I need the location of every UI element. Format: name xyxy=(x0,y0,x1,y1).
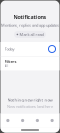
button[interactable]: Profile xyxy=(45,113,60,127)
staticText: Nothing new right now xyxy=(7,97,52,102)
button[interactable]: Mark all read xyxy=(14,31,46,38)
button[interactable]: Notifications xyxy=(30,113,45,127)
staticText: All xyxy=(4,64,8,68)
staticText: Mark all read xyxy=(19,32,43,37)
staticText: New notifications land here xyxy=(7,104,53,109)
staticText: Filters xyxy=(4,59,16,64)
staticText: Mentions, replies and app updates xyxy=(1,23,59,28)
staticText: Notifications xyxy=(13,13,46,21)
staticText: Today xyxy=(4,46,14,52)
button[interactable]: Filters xyxy=(0,56,59,70)
button[interactable]: Search xyxy=(15,113,30,127)
button[interactable]: Today xyxy=(0,42,59,56)
button[interactable]: Home xyxy=(0,113,15,127)
